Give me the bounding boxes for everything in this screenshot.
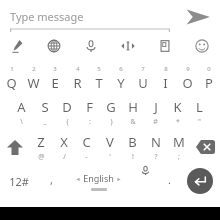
button[interactable]: B	[121, 130, 144, 164]
button[interactable]: Cursor control	[109, 34, 146, 58]
button[interactable]: H	[122, 94, 144, 130]
button[interactable]: 7	[132, 62, 154, 94]
staticText: P	[205, 74, 213, 92]
staticText: O	[182, 74, 193, 92]
staticText: U	[138, 74, 148, 92]
button[interactable]: Voice	[132, 164, 158, 198]
staticText: English	[83, 172, 114, 184]
button[interactable]: Send	[176, 0, 220, 34]
button[interactable]: ,	[38, 164, 64, 198]
staticText: J	[154, 98, 158, 116]
staticText: I	[163, 74, 168, 92]
button[interactable]: M	[167, 130, 190, 164]
button[interactable]: Emoji	[183, 34, 220, 58]
staticText: ◂	[76, 175, 80, 182]
button[interactable]: Z	[30, 130, 52, 164]
staticText: G	[106, 98, 116, 116]
staticText: !	[132, 152, 134, 162]
staticText: 0	[207, 65, 211, 73]
staticText: N	[151, 133, 161, 151]
button[interactable]: Clipboard	[146, 34, 183, 58]
staticText: T	[95, 74, 103, 92]
staticText: .	[168, 172, 171, 187]
staticText: Z	[37, 133, 45, 151]
staticText: A	[17, 98, 26, 116]
staticText: 4	[76, 65, 80, 73]
staticText: *	[176, 117, 180, 127]
button[interactable]: N	[144, 130, 167, 164]
staticText: "	[198, 117, 201, 127]
button[interactable]: Voice input	[72, 34, 109, 58]
staticText: ,	[50, 172, 53, 187]
button[interactable]: .	[158, 164, 180, 198]
button[interactable]: L	[188, 94, 210, 130]
staticText: -	[85, 152, 88, 162]
button[interactable]: 9	[176, 62, 198, 94]
staticText: )	[110, 117, 113, 127]
button[interactable]: 6	[110, 62, 132, 94]
staticText: ?	[154, 152, 158, 162]
staticText: 9	[186, 65, 190, 73]
button[interactable]: Handwriting	[0, 34, 36, 58]
staticText: X	[60, 133, 68, 151]
staticText: '	[109, 152, 111, 162]
button[interactable]: Enter	[180, 164, 220, 198]
button[interactable]: F	[78, 94, 100, 130]
staticText: F	[86, 98, 93, 116]
button[interactable]: V	[98, 130, 121, 164]
staticText: M	[173, 133, 185, 151]
staticText: R	[73, 74, 82, 92]
staticText: 3	[53, 65, 57, 73]
staticText: B	[128, 133, 137, 151]
staticText: V	[106, 133, 114, 151]
staticText: H	[128, 98, 138, 116]
staticText: C	[82, 133, 91, 151]
staticText: Y	[117, 74, 125, 92]
button[interactable]: Language	[36, 34, 72, 58]
button[interactable]: J	[144, 94, 166, 130]
staticText: \	[20, 117, 23, 127]
staticText: E	[51, 74, 59, 92]
staticText: /	[63, 152, 66, 162]
staticText: (	[66, 117, 69, 127]
staticText: 8	[164, 65, 168, 73]
staticText: #	[153, 117, 158, 127]
button[interactable]: Shift	[0, 130, 30, 164]
staticText: &	[130, 117, 136, 127]
staticText: S	[41, 98, 49, 116]
button[interactable]: G	[100, 94, 122, 130]
button[interactable]: 3	[44, 62, 66, 94]
button[interactable]: 5	[88, 62, 110, 94]
button[interactable]: S	[33, 94, 56, 130]
staticText: 7	[141, 65, 145, 73]
button[interactable]: C	[75, 130, 98, 164]
staticText: Type message	[10, 9, 84, 24]
button[interactable]: 2	[22, 62, 44, 94]
staticText: :	[89, 117, 91, 127]
button[interactable]: 1	[0, 62, 22, 94]
button[interactable]: Backspace	[190, 130, 220, 164]
button[interactable]: Type message	[10, 0, 170, 34]
staticText: W	[27, 74, 40, 92]
staticText: 6	[119, 65, 123, 73]
button[interactable]: ◂	[64, 164, 132, 198]
button[interactable]: 0	[198, 62, 220, 94]
staticText: 12#	[9, 174, 29, 189]
staticText: 2	[32, 65, 36, 73]
button[interactable]: 12#	[0, 164, 38, 198]
staticText: K	[173, 98, 182, 116]
staticText: D	[62, 98, 72, 116]
staticText: 5	[97, 65, 101, 73]
button[interactable]: X	[52, 130, 75, 164]
button[interactable]: A	[10, 94, 33, 130]
staticText: 1	[10, 65, 14, 73]
button[interactable]: 4	[66, 62, 88, 94]
staticText: Q	[6, 74, 17, 92]
staticText: @	[38, 152, 45, 162]
button[interactable]: 8	[154, 62, 176, 94]
staticText: ;	[178, 152, 180, 162]
button[interactable]: D	[56, 94, 78, 130]
staticText: _	[43, 117, 47, 127]
button[interactable]: K	[166, 94, 188, 130]
staticText: L	[196, 98, 203, 116]
